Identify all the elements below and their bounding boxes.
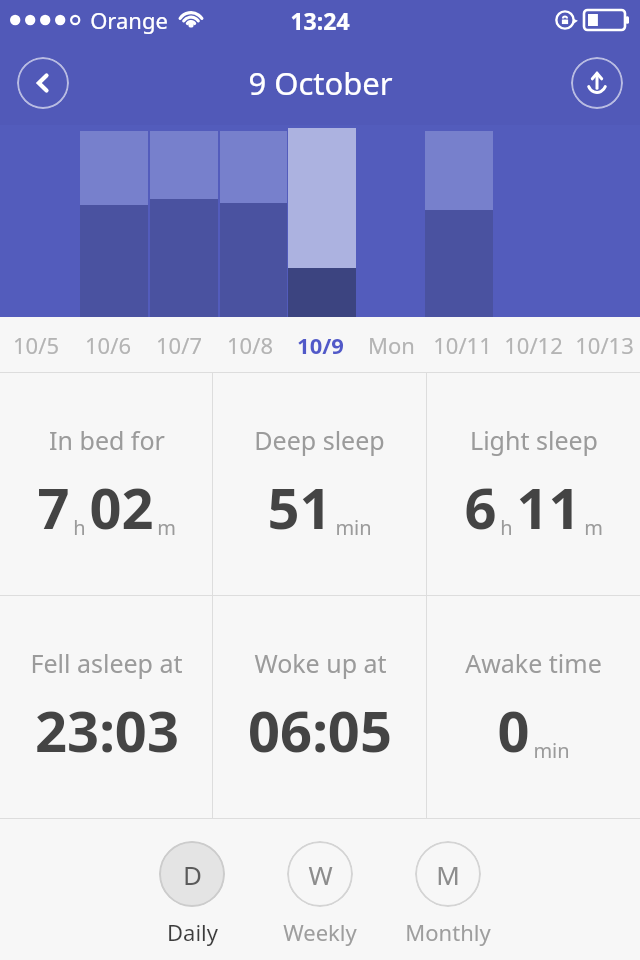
staticText: h [73,514,86,541]
staticText: Light sleep [470,423,598,457]
staticText: 06:05 [248,692,392,768]
staticText: Woke up at [254,646,387,680]
staticText: 6 [464,469,497,545]
button[interactable]: Awake time [427,596,640,818]
staticText: min [533,737,570,764]
staticText: M [436,857,460,892]
button[interactable]: In bed for [0,373,212,595]
staticText: 02 [89,469,154,545]
staticText: 10/7 [156,330,202,360]
staticText: 11 [516,469,581,545]
button[interactable]: Woke up at [213,596,426,818]
staticText: 13:24 [290,5,350,36]
staticText: 10/9 [297,330,344,360]
staticText: 10/12 [504,330,563,360]
staticText: 23:03 [35,692,179,768]
staticText: h [500,514,513,541]
staticText: Deep sleep [254,423,385,457]
staticText: W [308,857,333,892]
staticText: Weekly [283,917,357,947]
staticText: 10/6 [85,330,131,360]
staticText: D [183,857,202,892]
staticText: 10/13 [575,330,634,360]
staticText: 10/5 [13,330,59,360]
staticText: In bed for [49,423,165,457]
button[interactable]: D [148,841,236,947]
staticText: m [584,514,603,541]
staticText: 10/8 [227,330,273,360]
staticText: min [335,514,372,541]
staticText: Monthly [405,917,491,947]
button[interactable]: Share [571,57,623,109]
staticText: 10/11 [433,330,492,360]
staticText: 9 October [248,62,393,104]
staticText: m [157,514,176,541]
staticText: 51 [267,469,332,545]
staticText: Awake time [465,646,602,680]
staticText: Fell asleep at [30,646,183,680]
button[interactable]: Deep sleep [213,373,426,595]
button[interactable]: Back [17,57,69,109]
staticText: 7 [37,469,70,545]
staticText: Daily [167,917,218,947]
staticText: Orange [90,5,168,35]
button[interactable]: Fell asleep at [0,596,212,818]
staticText: Mon [368,330,415,360]
button[interactable]: M [404,841,492,947]
staticText: 0 [497,692,530,768]
button[interactable]: Light sleep [427,373,640,595]
button[interactable]: W [276,841,364,947]
